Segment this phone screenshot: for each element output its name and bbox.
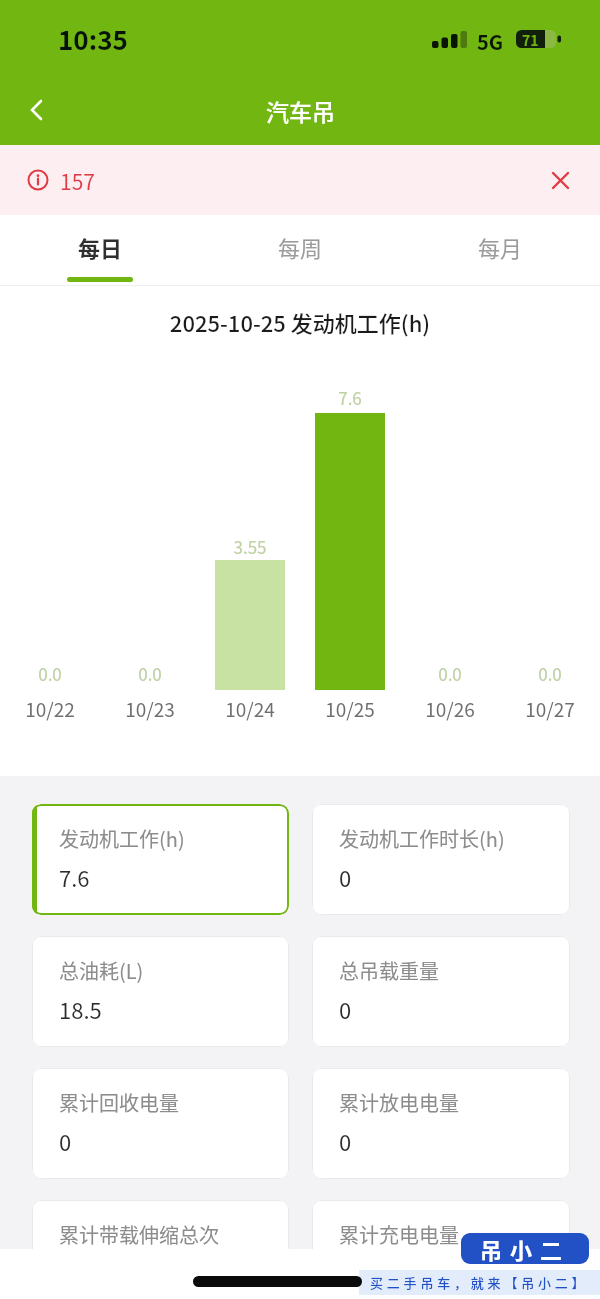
button[interactable]: 累计带载伸缩总次	[32, 1200, 289, 1299]
button[interactable]: 每月	[400, 215, 600, 286]
staticText: 0	[59, 1125, 72, 1157]
staticText: 每月	[478, 231, 523, 263]
staticText: 发动机工作(h)	[59, 824, 185, 853]
staticText: 累计充电电量	[339, 1220, 459, 1249]
staticText: 0	[339, 993, 352, 1025]
staticText: 总吊载重量	[339, 956, 439, 985]
staticText: 吊小二	[480, 1233, 571, 1264]
staticText: 10/24	[200, 695, 300, 723]
staticText: 10/26	[400, 695, 500, 723]
staticText: 10:35	[58, 20, 128, 58]
button[interactable]: 发动机工作时长(h)	[312, 804, 570, 915]
staticText: 71	[522, 30, 539, 50]
staticText: 5G	[477, 27, 504, 56]
staticText: 3.55	[200, 534, 300, 559]
staticText: 汽车吊	[266, 94, 335, 127]
button[interactable]: 每周	[200, 215, 400, 286]
staticText: 每周	[278, 231, 323, 263]
button[interactable]: 每日	[0, 215, 200, 286]
button[interactable]: 总油耗(L)	[32, 936, 289, 1047]
staticText: 发动机工作时长(h)	[339, 824, 505, 853]
staticText: 每日	[78, 231, 123, 263]
staticText: 累计带载伸缩总次	[59, 1220, 219, 1249]
button[interactable]: 吊小二	[461, 1233, 589, 1264]
staticText: 0.0	[100, 661, 200, 686]
button[interactable]	[542, 162, 578, 198]
staticText: 157	[60, 166, 95, 196]
staticText: 买二手吊车，就来【吊小二】	[370, 1273, 589, 1292]
staticText: 7.6	[300, 385, 400, 410]
staticText: 2025-10-25 发动机工作(h)	[0, 306, 600, 338]
staticText: 总油耗(L)	[59, 956, 144, 985]
staticText: 0.0	[500, 661, 600, 686]
staticText: 10/22	[0, 695, 100, 723]
button[interactable]: 发动机工作(h)	[32, 804, 289, 915]
button[interactable]: 累计充电电量	[312, 1200, 570, 1299]
staticText: 7.6	[59, 861, 90, 893]
button[interactable]: 累计放电电量	[312, 1068, 570, 1179]
staticText: 0	[339, 861, 352, 893]
staticText: 累计回收电量	[59, 1088, 179, 1117]
staticText: 18.5	[59, 993, 102, 1025]
staticText: 0.0	[400, 661, 500, 686]
button[interactable]	[16, 88, 60, 132]
staticText: 0.0	[0, 661, 100, 686]
staticText: 10/23	[100, 695, 200, 723]
button[interactable]: 总吊载重量	[312, 936, 570, 1047]
staticText: 累计放电电量	[339, 1088, 459, 1117]
button[interactable]: 累计回收电量	[32, 1068, 289, 1179]
staticText: 10/27	[500, 695, 600, 723]
staticText: 0	[339, 1125, 352, 1157]
staticText: 10/25	[300, 695, 400, 723]
